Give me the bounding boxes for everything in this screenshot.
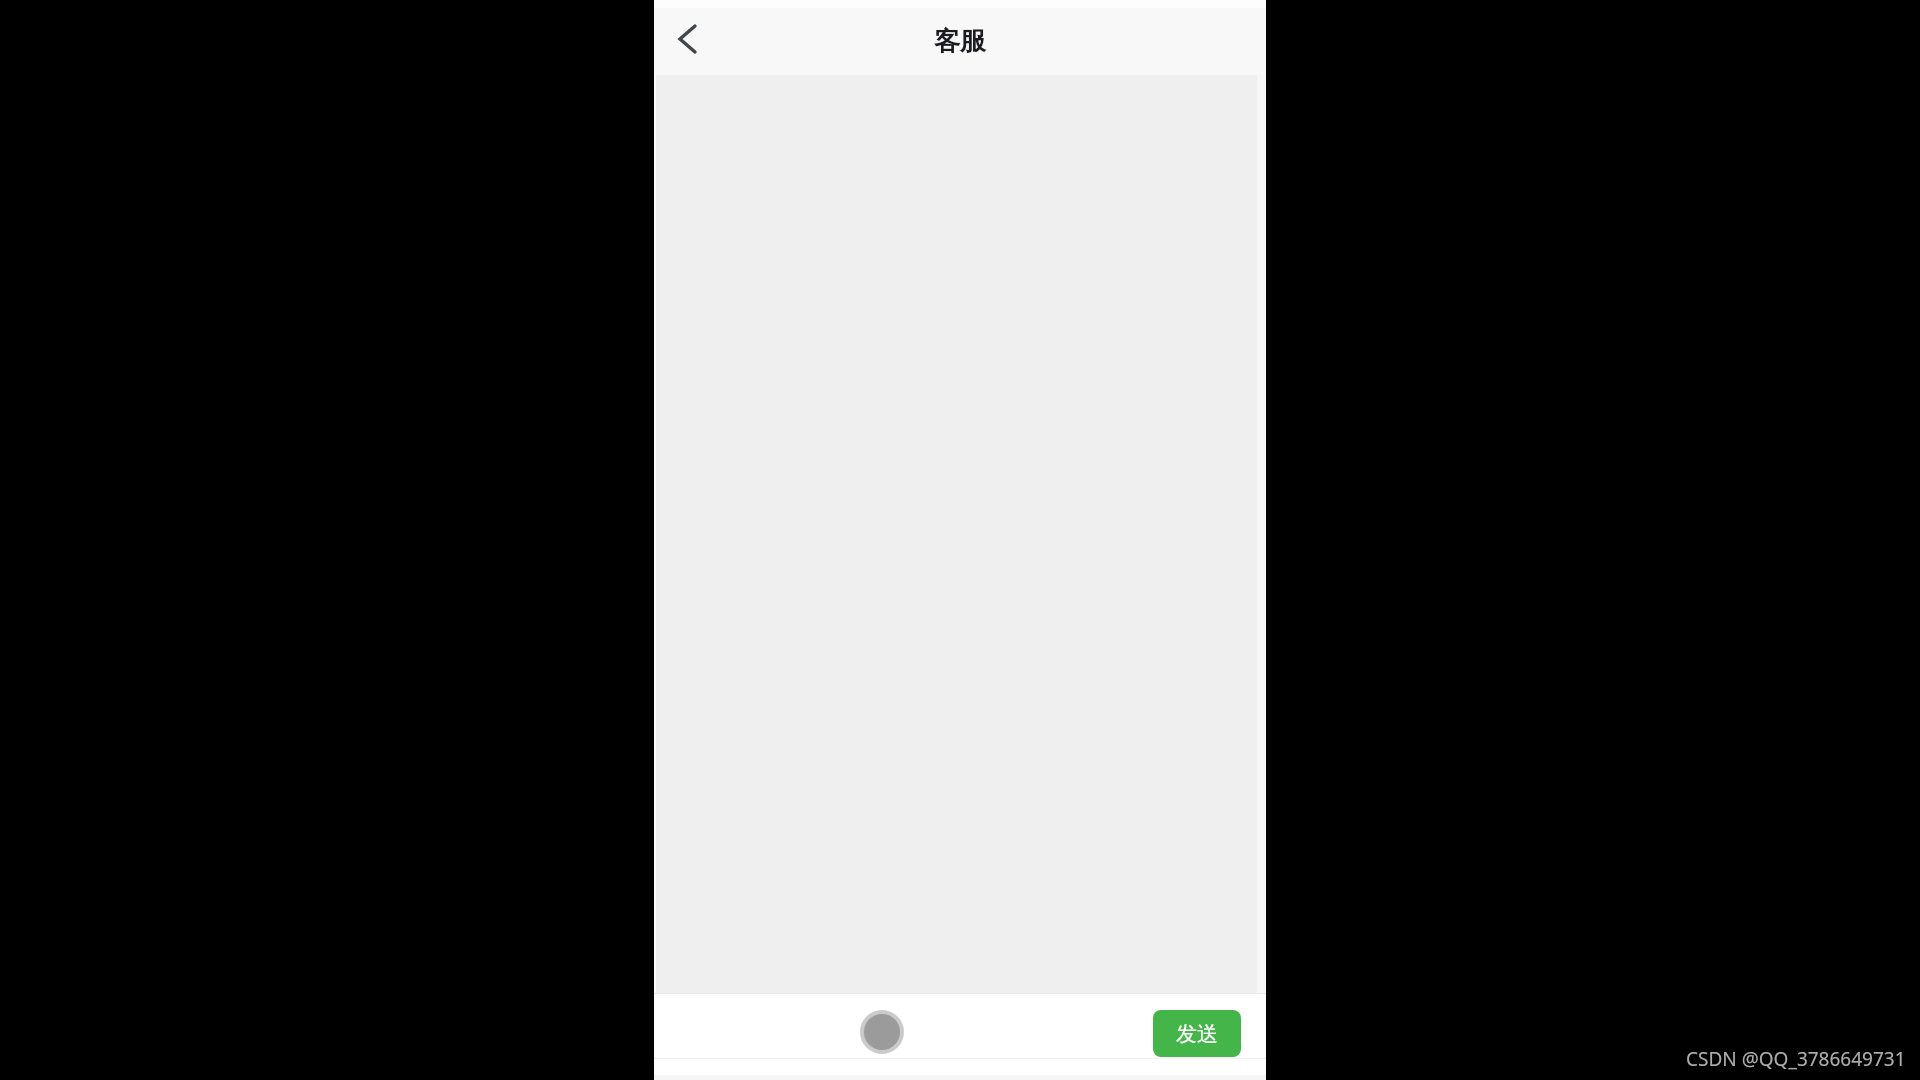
button[interactable]	[672, 20, 706, 62]
staticText: 发送	[1176, 1021, 1218, 1047]
button[interactable]	[860, 1010, 904, 1054]
button[interactable]: 发送	[1153, 1010, 1241, 1057]
staticText: 客服	[934, 25, 986, 58]
staticText: CSDN @QQ_3786649731	[1686, 1046, 1906, 1072]
